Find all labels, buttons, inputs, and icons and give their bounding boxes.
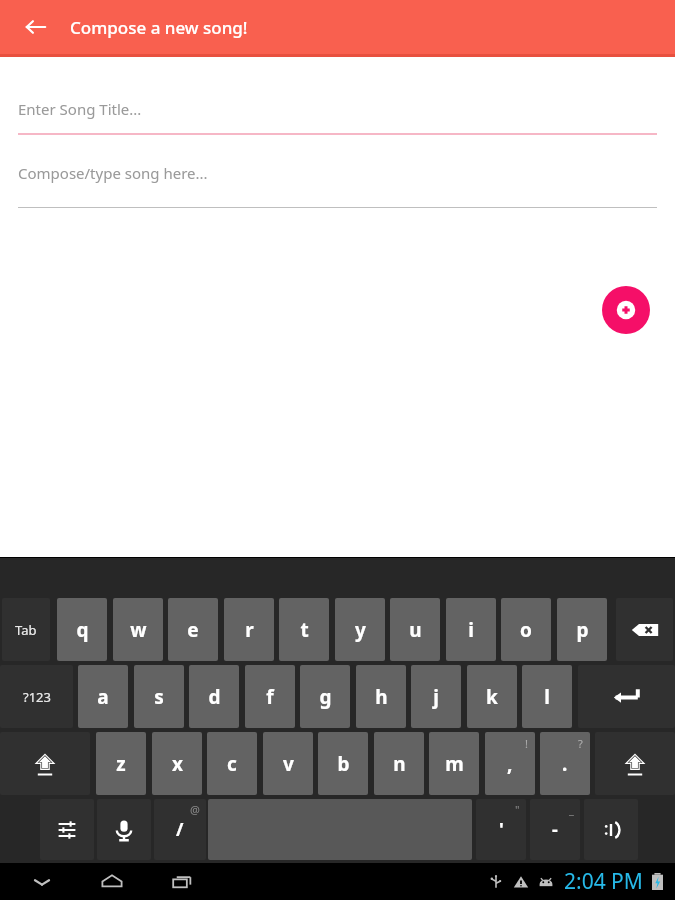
button[interactable]: c	[207, 732, 257, 795]
button[interactable]: Hide keyboard	[14, 863, 70, 900]
button[interactable]: n	[374, 732, 424, 795]
button[interactable]: y	[335, 598, 385, 661]
staticText: x	[172, 751, 183, 777]
staticText: Compose/type song here...	[18, 163, 208, 183]
staticText: d	[208, 684, 221, 710]
staticText: ,	[507, 751, 513, 777]
staticText: z	[116, 751, 126, 777]
staticText: y	[355, 617, 366, 643]
staticText: l	[544, 684, 550, 710]
button[interactable]: r	[224, 598, 274, 661]
button[interactable]: j	[411, 665, 461, 728]
button[interactable]: ?123	[0, 665, 73, 728]
staticText: s	[154, 684, 164, 710]
button[interactable]: m	[429, 732, 479, 795]
button[interactable]: Enter	[578, 665, 675, 728]
button[interactable]: h	[356, 665, 406, 728]
button[interactable]: Emoji	[584, 799, 638, 860]
button[interactable]: s	[134, 665, 184, 728]
button[interactable]: b	[318, 732, 368, 795]
button[interactable]: Keyboard settings	[40, 799, 94, 860]
button[interactable]: _	[530, 799, 580, 860]
staticText: Compose a new song!	[70, 16, 248, 39]
button[interactable]: i	[446, 598, 496, 661]
staticText: .	[562, 751, 568, 777]
staticText: "	[515, 802, 520, 817]
button[interactable]: o	[501, 598, 551, 661]
staticText: Enter Song Title...	[18, 99, 142, 119]
staticText: _	[569, 802, 574, 817]
button[interactable]: Backspace	[616, 598, 673, 661]
staticText: ?123	[23, 688, 51, 706]
button[interactable]: Home	[84, 863, 140, 900]
button[interactable]: w	[113, 598, 163, 661]
button[interactable]: Record	[602, 286, 650, 334]
staticText: b	[337, 751, 350, 777]
staticText: /	[176, 817, 184, 842]
staticText: n	[393, 751, 406, 777]
staticText: m	[445, 751, 464, 777]
button[interactable]: t	[279, 598, 329, 661]
button[interactable]: x	[152, 732, 202, 795]
staticText: p	[576, 617, 589, 643]
staticText: j	[433, 684, 439, 710]
staticText: t	[300, 617, 309, 643]
staticText: v	[283, 751, 294, 777]
staticText: !	[525, 736, 528, 751]
staticText: e	[187, 617, 199, 643]
button[interactable]: l	[522, 665, 572, 728]
staticText: @	[190, 802, 200, 817]
button[interactable]: Shift	[595, 732, 675, 795]
button[interactable]: ?	[540, 732, 590, 795]
staticText: q	[76, 617, 89, 643]
button[interactable]: u	[390, 598, 440, 661]
button[interactable]: Voice input	[97, 799, 151, 860]
button[interactable]: q	[57, 598, 107, 661]
button[interactable]: Back	[14, 5, 58, 49]
button[interactable]: z	[96, 732, 146, 795]
button[interactable]: g	[300, 665, 350, 728]
button[interactable]: f	[245, 665, 295, 728]
button[interactable]: e	[168, 598, 218, 661]
staticText: -	[552, 817, 558, 842]
staticText: h	[375, 684, 388, 710]
staticText: PM	[611, 867, 643, 896]
button[interactable]: v	[263, 732, 313, 795]
staticText: u	[409, 617, 422, 643]
staticText: f	[266, 684, 274, 710]
button[interactable]: k	[467, 665, 517, 728]
staticText: '	[499, 817, 504, 842]
button[interactable]: "	[476, 799, 526, 860]
button[interactable]: !	[485, 732, 535, 795]
staticText: k	[486, 684, 498, 710]
button[interactable]: Enter Song Title...	[18, 97, 657, 135]
button[interactable]: @	[154, 799, 206, 860]
staticText: i	[468, 617, 474, 643]
button[interactable]: Recent apps	[154, 863, 210, 900]
staticText: w	[130, 617, 147, 643]
staticText: c	[227, 751, 237, 777]
staticText: ?	[578, 736, 583, 751]
button[interactable]: a	[78, 665, 128, 728]
button[interactable]: p	[557, 598, 607, 661]
button[interactable]: d	[189, 665, 239, 728]
staticText: g	[319, 684, 332, 710]
staticText: Tab	[15, 621, 37, 639]
staticText: o	[520, 617, 532, 643]
staticText: a	[97, 684, 109, 710]
button[interactable]: Tab	[2, 598, 50, 661]
button[interactable]: Shift	[0, 732, 90, 795]
staticText: r	[245, 617, 254, 643]
button[interactable]: Compose/type song here...	[18, 161, 657, 208]
staticText: 2:04	[564, 867, 606, 896]
